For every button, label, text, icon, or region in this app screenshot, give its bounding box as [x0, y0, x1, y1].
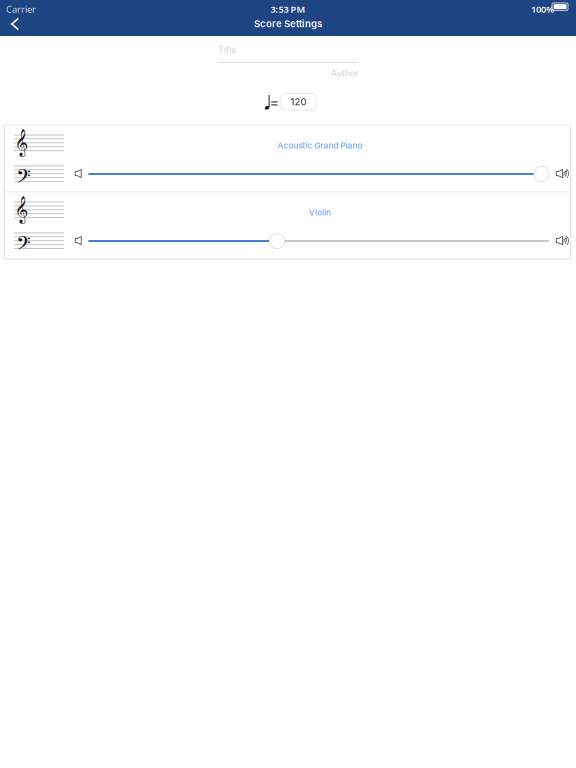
staticText: Violin: [309, 208, 331, 217]
staticText: 𝄞: [17, 195, 28, 224]
staticText: Author: [331, 68, 358, 78]
staticText: 𝄢: [17, 227, 31, 258]
staticText: 120: [290, 96, 306, 107]
staticText: =: [269, 93, 279, 111]
staticText: Acoustic Grand Piano: [277, 141, 362, 150]
staticText: Carrier: [6, 3, 36, 15]
button[interactable]: Violin: [190, 204, 450, 220]
staticText: ♩: [263, 73, 271, 121]
staticText: Score Settings: [254, 18, 322, 30]
button[interactable]: Back: [0, 12, 30, 36]
staticText: 𝄞: [17, 128, 28, 157]
staticText: 𝄢: [17, 160, 31, 191]
staticText: Title: [218, 44, 236, 55]
staticText: 3:53 PM: [270, 3, 305, 15]
staticText: 100%: [531, 3, 554, 15]
button[interactable]: Acoustic Grand Piano: [190, 137, 450, 153]
